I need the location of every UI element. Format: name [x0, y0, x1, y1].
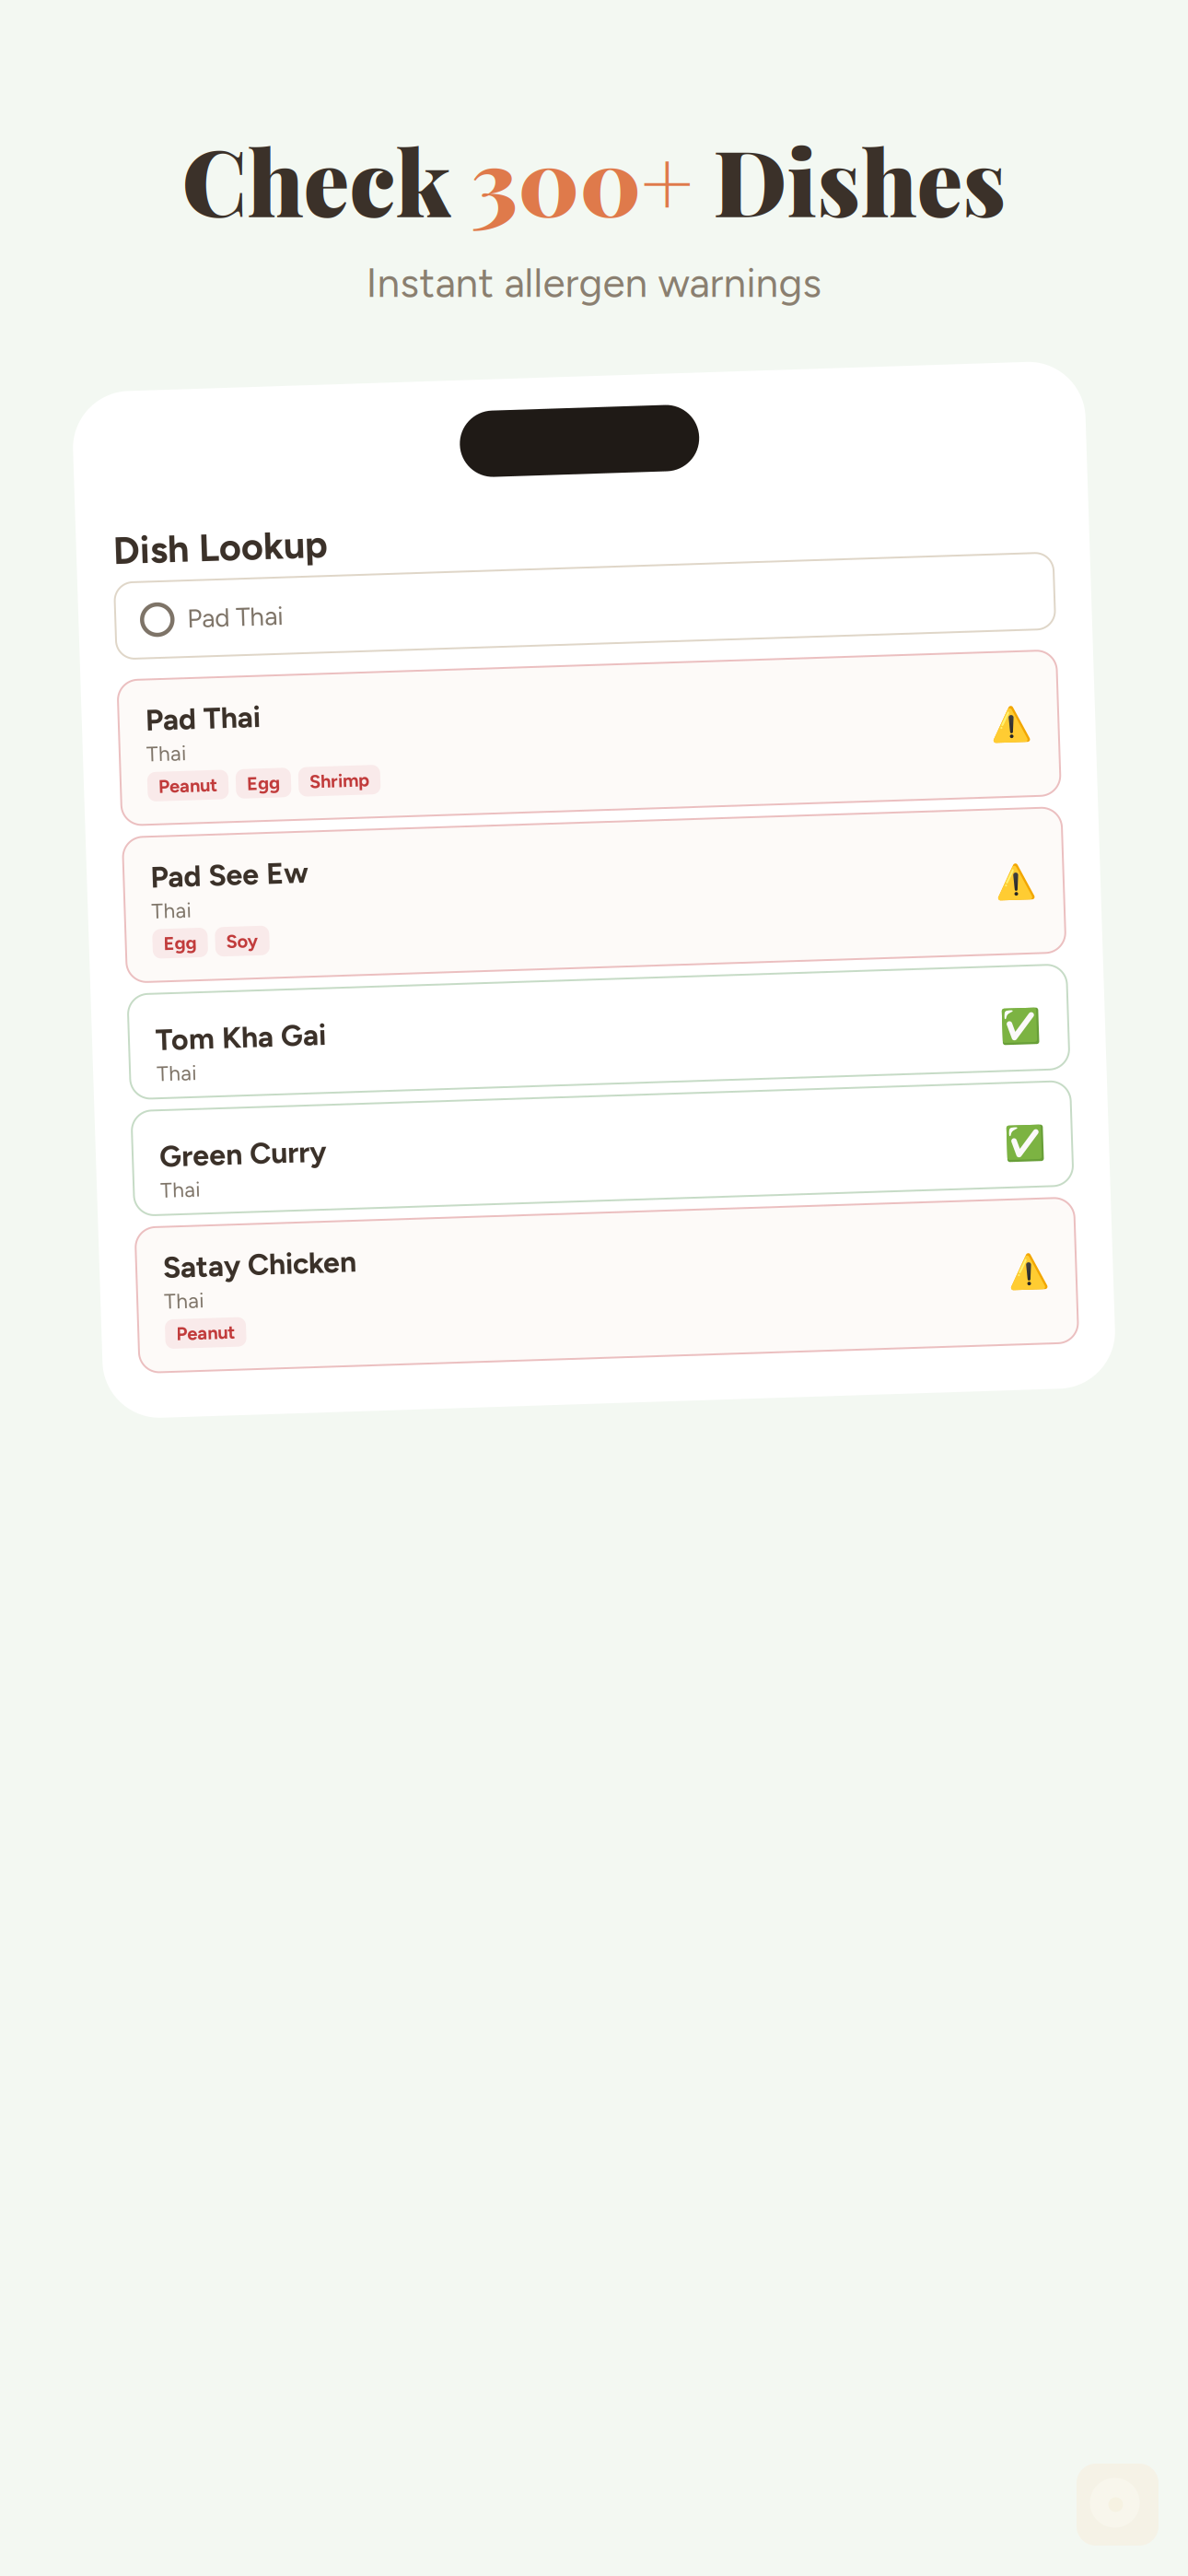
staticText: Thai — [151, 1164, 191, 1189]
staticText: Dish Lookup — [124, 513, 339, 558]
staticText: Egg — [250, 761, 284, 784]
staticText: Satay Chicken — [151, 1236, 344, 1271]
button[interactable]: Tom Kha Gai — [124, 979, 1064, 1084]
button[interactable]: Satay Chicken — [124, 1213, 1064, 1358]
staticText: ✅ — [996, 1138, 1037, 1176]
button[interactable]: Pad Thai — [124, 665, 1064, 810]
button[interactable]: Pad Thai — [124, 567, 1064, 644]
staticText: Peanut — [162, 761, 221, 784]
staticText: ⚠️ — [996, 719, 1037, 757]
staticText: Dishes — [693, 119, 1006, 240]
button[interactable]: Green Curry — [124, 1096, 1064, 1201]
staticText: ✅ — [996, 1021, 1037, 1059]
staticText: Pad See Ew — [151, 845, 309, 881]
staticText: Egg — [162, 919, 195, 941]
staticText: Instant allergen warnings — [366, 258, 822, 307]
staticText: ⚠️ — [996, 1266, 1037, 1304]
staticText: Green Curry — [151, 1125, 318, 1160]
staticText: Soy — [225, 919, 257, 941]
staticText: Shrimp — [313, 761, 373, 784]
staticText: Pad Thai — [196, 590, 292, 621]
staticText: 300+ — [471, 119, 693, 240]
button[interactable]: Pad See Ew — [124, 822, 1064, 967]
staticText: ⚠️ — [996, 876, 1037, 914]
staticText: Check — [182, 119, 471, 240]
staticText: Pad Thai — [151, 688, 266, 724]
staticText: Thai — [151, 1275, 191, 1300]
staticText: Thai — [151, 1047, 191, 1072]
staticText: Peanut — [162, 1309, 221, 1331]
staticText: Tom Kha Gai — [151, 1008, 321, 1043]
staticText: Thai — [151, 727, 191, 752]
staticText: Thai — [151, 884, 191, 909]
